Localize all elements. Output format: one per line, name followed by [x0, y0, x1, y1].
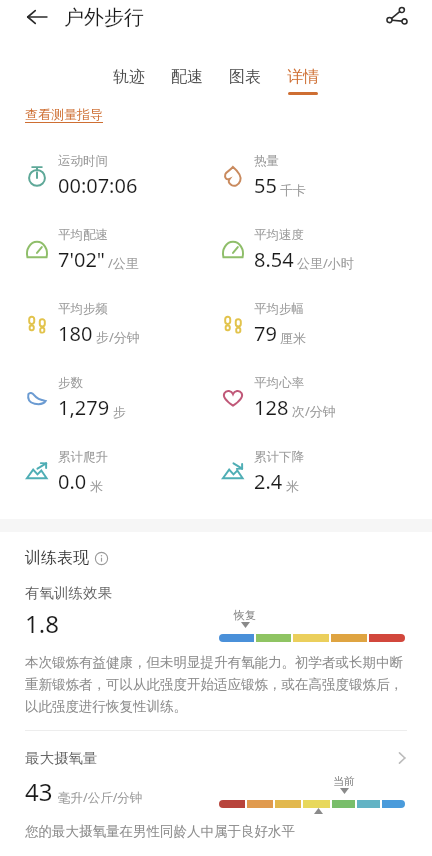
staticText: 当前 — [333, 774, 355, 788]
staticText: 00:07:06 — [58, 172, 138, 199]
other: More — [394, 750, 410, 766]
staticText: 轨迹 — [113, 67, 145, 87]
staticText: 米 — [90, 478, 103, 494]
staticText: 43 — [25, 775, 53, 808]
staticText: 毫升/公斤/分钟 — [58, 789, 143, 806]
button[interactable]: 平均步幅 — [221, 287, 432, 361]
staticText: 平均步频 — [58, 301, 108, 317]
button[interactable]: 平均速度 — [221, 213, 432, 287]
staticText: 厘米 — [280, 330, 306, 346]
button[interactable]: 查看测量指导 — [25, 106, 103, 123]
staticText: 步 — [113, 404, 126, 420]
staticText: 累计爬升 — [58, 449, 108, 465]
staticText: 7'02" — [58, 246, 105, 273]
staticText: 图表 — [229, 67, 261, 87]
button[interactable]: 平均步频 — [25, 287, 216, 361]
staticText: 详情 — [287, 67, 319, 87]
staticText: 本次锻炼有益健康，但未明显提升有氧能力。初学者或长期中断 — [25, 654, 403, 671]
staticText: 训练表现 — [25, 548, 89, 568]
staticText: 次/分钟 — [292, 402, 336, 420]
staticText: 128 — [254, 394, 289, 421]
staticText: 重新锻炼者，可以从此强度开始适应锻炼，或在高强度锻炼后， — [25, 676, 403, 693]
staticText: 米 — [286, 478, 299, 494]
staticText: 2.4 — [254, 468, 283, 495]
button[interactable]: 步数 — [25, 361, 216, 435]
staticText: 79 — [254, 320, 277, 347]
button[interactable]: 累计下降 — [221, 435, 432, 509]
button[interactable]: 平均心率 — [221, 361, 432, 435]
staticText: 1,279 — [58, 394, 110, 421]
staticText: 步/分钟 — [96, 328, 140, 346]
button[interactable]: 详情 — [287, 67, 319, 95]
staticText: /公里 — [108, 254, 139, 272]
button[interactable]: 累计爬升 — [25, 435, 216, 509]
staticText: 最大摄氧量 — [25, 749, 98, 767]
staticText: 平均配速 — [58, 227, 108, 243]
button[interactable]: Share — [380, 0, 414, 34]
staticText: 平均步幅 — [254, 301, 304, 317]
button[interactable]: 运动时间 — [25, 139, 216, 213]
staticText: 公里/小时 — [297, 254, 354, 272]
staticText: 累计下降 — [254, 449, 304, 465]
staticText: 您的最大摄氧量在男性同龄人中属于良好水平 — [25, 823, 295, 840]
staticText: 步数 — [58, 375, 83, 391]
button[interactable]: 最大摄氧量 — [0, 731, 432, 840]
button[interactable]: 配速 — [171, 67, 203, 95]
staticText: 查看测量指导 — [25, 106, 103, 122]
button[interactable]: 热量 — [221, 139, 432, 213]
staticText: 热量 — [254, 153, 279, 169]
staticText: 户外步行 — [64, 5, 144, 30]
staticText: 配速 — [171, 67, 203, 87]
staticText: 0.0 — [58, 468, 87, 495]
button[interactable]: 训练表现 — [25, 548, 108, 568]
button[interactable]: Back — [22, 2, 52, 32]
button[interactable]: 图表 — [229, 67, 261, 95]
button[interactable]: 轨迹 — [113, 67, 145, 95]
staticText: 平均心率 — [254, 375, 304, 391]
staticText: 8.54 — [254, 246, 294, 273]
staticText: 1.8 — [25, 607, 59, 640]
staticText: 运动时间 — [58, 153, 108, 169]
staticText: 千卡 — [280, 182, 306, 198]
button[interactable]: 平均配速 — [25, 213, 216, 287]
staticText: 以此强度进行恢复性训练。 — [25, 698, 187, 715]
staticText: 180 — [58, 320, 93, 347]
staticText: 55 — [254, 172, 277, 199]
staticText: 有氧训练效果 — [25, 584, 112, 602]
staticText: 平均速度 — [254, 227, 304, 243]
staticText: 恢复 — [234, 608, 256, 622]
